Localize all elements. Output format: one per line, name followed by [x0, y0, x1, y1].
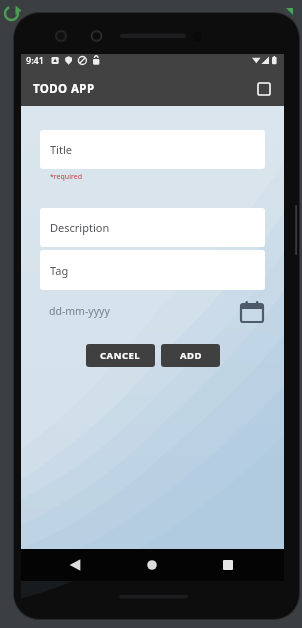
staticText: CANCEL — [100, 349, 141, 362]
button[interactable]: Tag — [40, 250, 265, 290]
button[interactable]: Toggle list view — [254, 79, 274, 99]
staticText: Tag — [50, 263, 69, 278]
staticText: ADD — [180, 349, 202, 362]
button[interactable]: Back — [61, 551, 89, 579]
button[interactable]: Pick date — [239, 298, 265, 324]
staticText: TODO APP — [33, 81, 95, 97]
staticText: Description — [50, 220, 110, 235]
staticText: *required — [50, 172, 82, 182]
button[interactable]: dd-mm-yyyy — [49, 304, 110, 318]
button[interactable]: Description — [40, 208, 265, 247]
button[interactable]: Recents — [214, 551, 242, 579]
button[interactable]: Title — [40, 130, 265, 169]
button[interactable]: ADD — [161, 344, 220, 367]
button[interactable]: Home — [138, 551, 166, 579]
staticText: Title — [50, 142, 72, 157]
button[interactable]: CANCEL — [86, 344, 155, 367]
staticText: 9:41 — [26, 54, 44, 66]
